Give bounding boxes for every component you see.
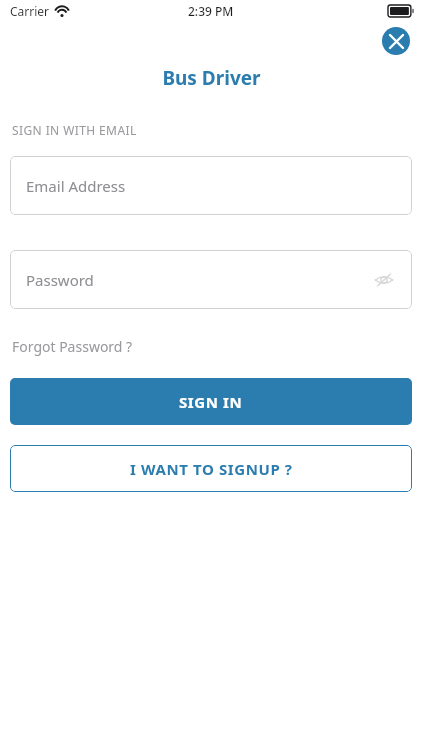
button[interactable]: Email Address	[10, 156, 412, 215]
staticText: SIGN IN WITH EMAIL	[12, 122, 137, 138]
button[interactable]: I WANT TO SIGNUP ?	[10, 445, 412, 492]
staticText: Password	[26, 270, 94, 290]
button[interactable]: Forgot Password ?	[12, 337, 133, 356]
staticText: Email Address	[26, 176, 126, 196]
button[interactable]: SIGN IN	[10, 378, 412, 425]
button[interactable]: Show password	[368, 264, 400, 296]
staticText: I WANT TO SIGNUP ?	[130, 459, 293, 479]
staticText: Carrier	[10, 3, 50, 19]
staticText: SIGN IN	[179, 392, 243, 412]
button[interactable]: Close	[382, 27, 410, 55]
staticText: Forgot Password ?	[12, 337, 133, 356]
button[interactable]: Password	[10, 250, 412, 309]
staticText: Bus Driver	[162, 65, 261, 91]
staticText: 2:39 PM	[188, 3, 234, 19]
